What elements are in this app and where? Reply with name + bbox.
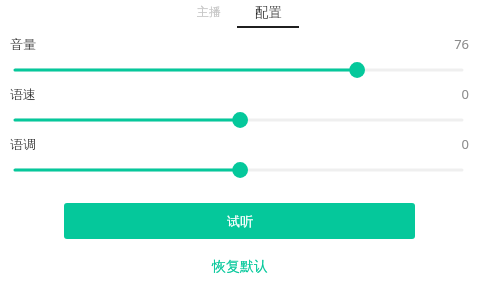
staticText: 0 — [0, 135, 469, 153]
staticText: 试听 — [227, 213, 253, 229]
button[interactable]: 音量 slider, value 76 — [0, 32, 479, 82]
button[interactable]: 恢复默认 — [204, 254, 276, 280]
staticText: 语调 — [10, 136, 36, 152]
button[interactable]: 试听 — [64, 203, 415, 239]
staticText: 语速 — [10, 86, 36, 102]
button[interactable]: 主播 — [178, 0, 239, 30]
staticText: 音量 — [10, 36, 36, 52]
staticText: 恢复默认 — [212, 258, 268, 276]
staticText: 76 — [0, 35, 469, 53]
staticText: 主播 — [197, 4, 221, 19]
button[interactable]: 语调 slider, value 0 — [0, 132, 479, 182]
staticText: 配置 — [255, 4, 282, 21]
staticText: 0 — [0, 85, 469, 103]
button[interactable]: 语速 slider, value 0 — [0, 82, 479, 132]
button[interactable]: 配置 — [237, 0, 299, 30]
